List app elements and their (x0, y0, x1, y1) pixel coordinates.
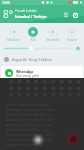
staticText: korumasini etkinlestirin. Daha (6, 132, 53, 136)
button[interactable]: Wifi (27, 27, 39, 42)
button[interactable]: Bugun 28 · Bu ay 2 bildirim (4, 55, 80, 64)
button[interactable]: Konum (66, 27, 78, 42)
staticText: Yeni mesaj geldi (16, 74, 39, 78)
staticText: Sistem yoneticisi tarafindan (6, 102, 49, 106)
button[interactable]: Mobil veri (6, 27, 21, 42)
staticText: olmadigi belirtilmektedir. Lutfen (6, 117, 56, 121)
staticText: Mobil veri (7, 38, 20, 42)
staticText: Bluetooth (46, 38, 59, 42)
button[interactable]: Settings (72, 12, 78, 18)
staticText: WhatsApp (16, 69, 34, 74)
staticText: Konum (67, 38, 77, 42)
staticText: gerekli guncellemeleri en kisa (6, 122, 52, 126)
staticText: ziyaret edebilirsiniz. (6, 142, 37, 146)
staticText: 10:38 (2, 1, 10, 5)
staticText: Wifi (30, 38, 36, 42)
staticText: guvenlik ayarlarinizin guncel (6, 112, 51, 116)
button[interactable]: Record (67, 133, 79, 145)
staticText: fazla bilgi icin destek sayfasini (6, 137, 53, 141)
button[interactable]: WhatsApp (1, 66, 83, 80)
staticText: 8° (3, 7, 13, 21)
staticText: gonderilen bu bildirimde cihaz (6, 107, 54, 111)
button[interactable]: Bluetooth (45, 27, 60, 42)
staticText: Istanbul / Turkiye (15, 14, 47, 19)
staticText: Bugun 28 · Bu ay 2 bildirim (12, 58, 53, 62)
staticText: Parcali bulutlu (15, 9, 37, 13)
staticText: surede tamamlayin ve cihaz (6, 127, 49, 131)
button[interactable]: Menu (63, 12, 69, 18)
